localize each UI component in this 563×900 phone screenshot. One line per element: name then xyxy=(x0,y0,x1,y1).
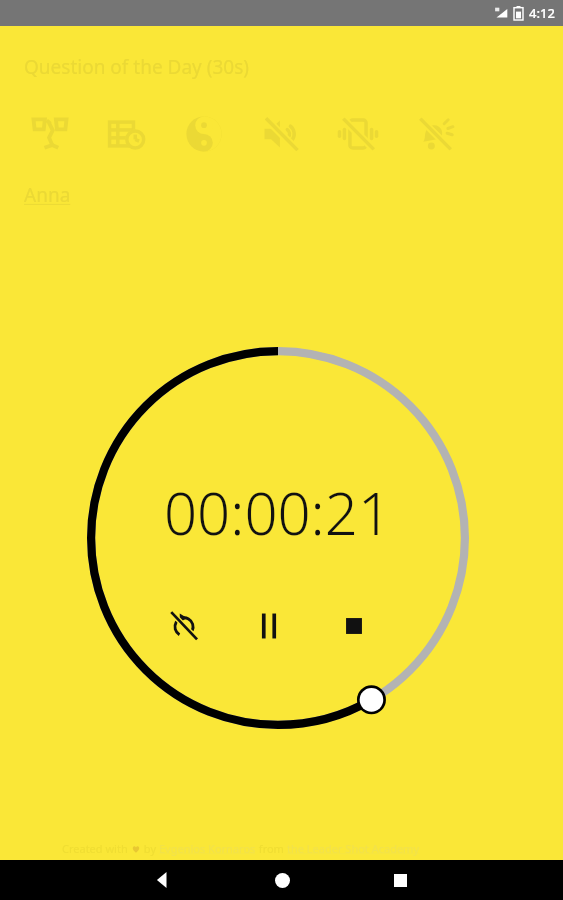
button[interactable]: Pause xyxy=(245,602,292,649)
staticText: Anna xyxy=(24,182,71,208)
button[interactable]: Mute xyxy=(255,108,307,160)
button[interactable]: Stop xyxy=(330,602,377,649)
button[interactable]: Recents xyxy=(377,860,423,900)
staticText: the Leader Shot Academy xyxy=(287,841,420,856)
button[interactable]: Drink xyxy=(24,108,76,160)
staticText: from xyxy=(256,841,287,856)
button[interactable]: the Leader Shot Academy xyxy=(287,841,420,856)
button[interactable]: Home xyxy=(259,860,305,900)
button[interactable]: Evgenios Kornaros xyxy=(159,841,256,856)
button[interactable]: Back xyxy=(140,860,186,900)
staticText: Question of the Day (30s) xyxy=(24,54,249,80)
staticText: by xyxy=(141,841,159,856)
staticText: 00:00:21 xyxy=(164,473,392,552)
staticText: 4:12 xyxy=(529,4,555,22)
button[interactable]: Vibration off xyxy=(332,108,384,160)
staticText: Evgenios Kornaros xyxy=(159,841,256,856)
staticText: Created with xyxy=(62,841,131,856)
button[interactable]: Schedule xyxy=(101,108,153,160)
button[interactable]: Balance xyxy=(178,108,230,160)
button[interactable]: Notifications off xyxy=(409,108,461,160)
button[interactable]: Anna xyxy=(24,182,71,208)
button[interactable]: Loop off xyxy=(160,602,207,649)
